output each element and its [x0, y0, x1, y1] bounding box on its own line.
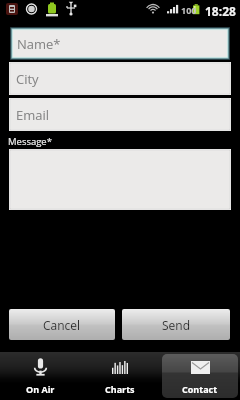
staticText: Cancel — [43, 317, 81, 333]
button[interactable]: Send — [122, 309, 230, 340]
button[interactable]: On Air — [2, 354, 78, 398]
button[interactable]: Charts — [82, 354, 158, 398]
staticText: City — [16, 70, 39, 88]
staticText: Name* — [17, 35, 61, 53]
staticText: 100 — [181, 4, 197, 16]
staticText: Contact — [182, 383, 218, 395]
button[interactable]: Contact — [162, 354, 238, 398]
staticText: On Air — [26, 383, 55, 395]
other: Contact — [191, 361, 210, 374]
other: On Air — [34, 358, 47, 376]
button[interactable]: Email — [10, 99, 230, 130]
staticText: Email — [16, 106, 50, 124]
button[interactable]: City — [10, 63, 230, 94]
staticText: Send — [162, 317, 191, 333]
button[interactable]: Cancel — [9, 309, 115, 340]
staticText: 18:28 — [205, 3, 236, 19]
other: Charts — [112, 361, 128, 374]
button[interactable]: Name* — [10, 27, 230, 60]
staticText: Charts — [105, 383, 135, 395]
staticText: Message* — [8, 135, 52, 148]
